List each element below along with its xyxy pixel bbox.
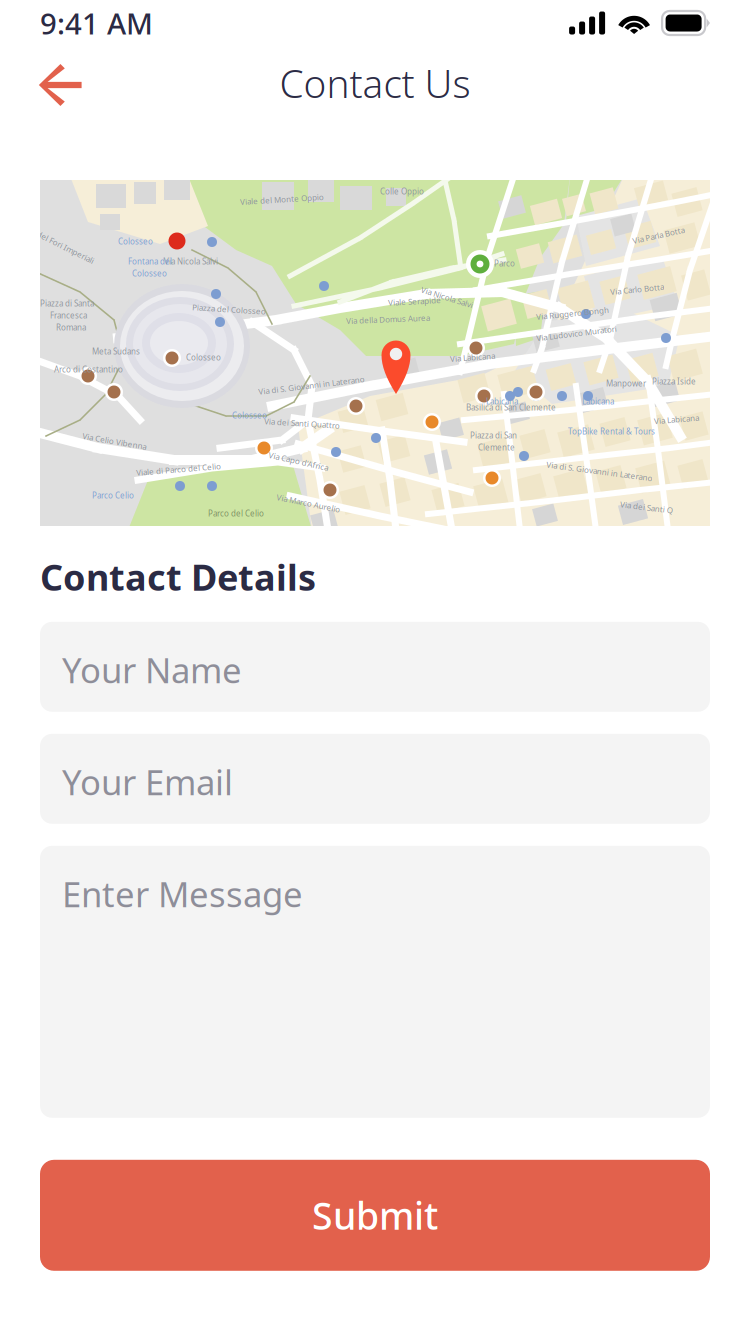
button[interactable]: Submit: [40, 1160, 710, 1271]
staticText: Via Carlo Botta: [610, 284, 664, 295]
staticText: Viale Serapide: [388, 296, 441, 307]
staticText: Colosseo: [232, 410, 267, 421]
staticText: Contact Us: [279, 57, 470, 109]
button[interactable]: Back: [20, 49, 104, 121]
staticText: Your Email: [62, 759, 233, 805]
staticText: Manpower: [606, 378, 646, 389]
staticText: Francesca: [50, 310, 87, 321]
staticText: Fontana del: [128, 256, 172, 267]
staticText: TopBike Rental & Tours: [568, 426, 655, 437]
staticText: Via Ruggero Bongh: [536, 308, 609, 319]
staticText: Via Capo d'Africa: [268, 456, 329, 467]
staticText: Colosseo: [118, 236, 153, 247]
staticText: Via Nicola Salvi: [420, 292, 474, 303]
staticText: Viale di Parco del Celio: [136, 464, 221, 475]
staticText: Colosseo: [186, 352, 221, 363]
staticText: Contact Details: [40, 553, 316, 601]
staticText: Via Labicana: [450, 352, 495, 363]
staticText: Romana: [56, 322, 86, 333]
staticText: Via di S. Giovanni in Laterano: [546, 466, 653, 477]
staticText: Labicana: [582, 396, 614, 407]
staticText: Submit: [312, 1190, 438, 1240]
staticText: Via Celio Vibenna: [82, 436, 147, 447]
staticText: Your Name: [62, 647, 242, 693]
staticText: Piazza Iside: [652, 376, 696, 387]
staticText: Via Labicana: [654, 414, 699, 425]
staticText: Colosseo: [132, 268, 167, 279]
staticText: Piazza di San: [470, 430, 517, 441]
staticText: Via dei Santi Q: [620, 502, 673, 513]
button[interactable]: Enter Message: [40, 846, 710, 1118]
staticText: Parco: [494, 258, 515, 269]
staticText: Colle Oppio: [380, 186, 424, 197]
staticText: Arco di Costantino: [54, 364, 123, 375]
button[interactable]: Your Email: [40, 734, 710, 824]
staticText: Piazza del Colosseo: [192, 304, 266, 315]
staticText: Meta Sudans: [92, 346, 140, 357]
staticText: Via dei Santi Quattro: [264, 418, 340, 429]
staticText: Labicana: [486, 396, 518, 407]
staticText: Parco Celio: [92, 490, 134, 501]
staticText: Via Ludovico Muratori: [536, 328, 617, 339]
staticText: Via della Domus Aurea: [346, 314, 430, 325]
button[interactable]: Your Name: [40, 622, 710, 712]
staticText: Via Marco Aurelio: [276, 498, 341, 509]
staticText: del Fori Imperiali: [34, 242, 97, 253]
staticText: Via Nicola Salvi: [164, 256, 218, 267]
staticText: Via di S. Giovanni in Laterano: [258, 380, 365, 391]
staticText: Piazza di Santa: [40, 298, 94, 309]
staticText: Parco del Celio: [208, 508, 264, 519]
staticText: Basilica di San Clemente: [466, 402, 556, 413]
staticText: Via Parla Botta: [632, 230, 685, 241]
staticText: Enter Message: [62, 871, 303, 917]
staticText: Clemente: [478, 442, 515, 453]
staticText: 9:41 AM: [40, 3, 153, 42]
staticText: Viale del Monte Oppio: [240, 194, 324, 205]
